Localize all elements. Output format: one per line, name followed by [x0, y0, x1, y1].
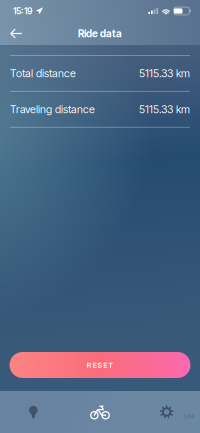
staticText: 5.4.4: [183, 413, 195, 420]
staticText: 5115.33 km: [139, 67, 190, 80]
button[interactable]: RESET: [9, 352, 190, 378]
staticText: 5115.33 km: [139, 103, 190, 116]
button[interactable]: Back: [0, 23, 34, 43]
button[interactable]: Ride data: [67, 391, 133, 433]
staticText: Ride data: [78, 27, 122, 40]
staticText: 15:19: [13, 5, 33, 16]
staticText: Total distance: [10, 67, 76, 80]
staticText: RESET: [87, 360, 113, 369]
staticText: Traveling distance: [10, 103, 95, 116]
button[interactable]: Settings: [133, 391, 200, 433]
button[interactable]: Lights: [0, 391, 67, 433]
